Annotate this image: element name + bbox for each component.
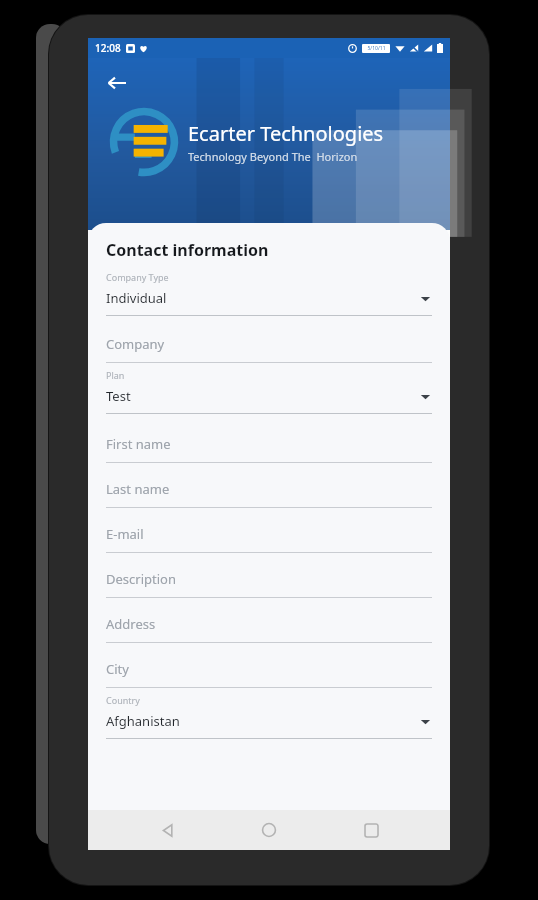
staticText: Individual — [106, 289, 420, 307]
button[interactable]: Back — [146, 810, 190, 850]
button[interactable]: Recent apps — [349, 810, 393, 850]
button[interactable]: Address — [106, 606, 432, 643]
button[interactable]: City — [106, 651, 432, 688]
staticText: Test — [106, 387, 420, 405]
staticText: Afghanistan — [106, 712, 420, 730]
button[interactable]: Plan — [106, 365, 432, 414]
button[interactable]: Home — [247, 810, 291, 850]
staticText: City — [106, 660, 129, 678]
staticText: 12:08 — [95, 41, 121, 55]
staticText: First name — [106, 435, 171, 453]
staticText: Last name — [106, 480, 170, 498]
button[interactable]: Country — [106, 690, 432, 739]
staticText: Contact information — [106, 239, 269, 261]
button[interactable]: Company Type — [106, 267, 432, 316]
staticText: E-mail — [106, 525, 144, 543]
button[interactable]: E-mail — [106, 516, 432, 553]
staticText: Ecarter Technologies — [188, 120, 384, 147]
button[interactable]: Last name — [106, 471, 432, 508]
button[interactable]: Description — [106, 561, 432, 598]
staticText: Plan — [106, 369, 125, 381]
button[interactable]: Back — [98, 64, 136, 102]
staticText: Company — [106, 335, 165, 353]
staticText: Company Type — [106, 271, 169, 283]
staticText: Address — [106, 615, 156, 633]
staticText: 5/10/11 — [367, 45, 386, 52]
staticText: Country — [106, 694, 140, 706]
button[interactable]: First name — [106, 426, 432, 463]
button[interactable]: Company — [106, 326, 432, 363]
staticText: Technology Beyond The Horizon — [188, 149, 358, 164]
staticText: Description — [106, 570, 176, 588]
